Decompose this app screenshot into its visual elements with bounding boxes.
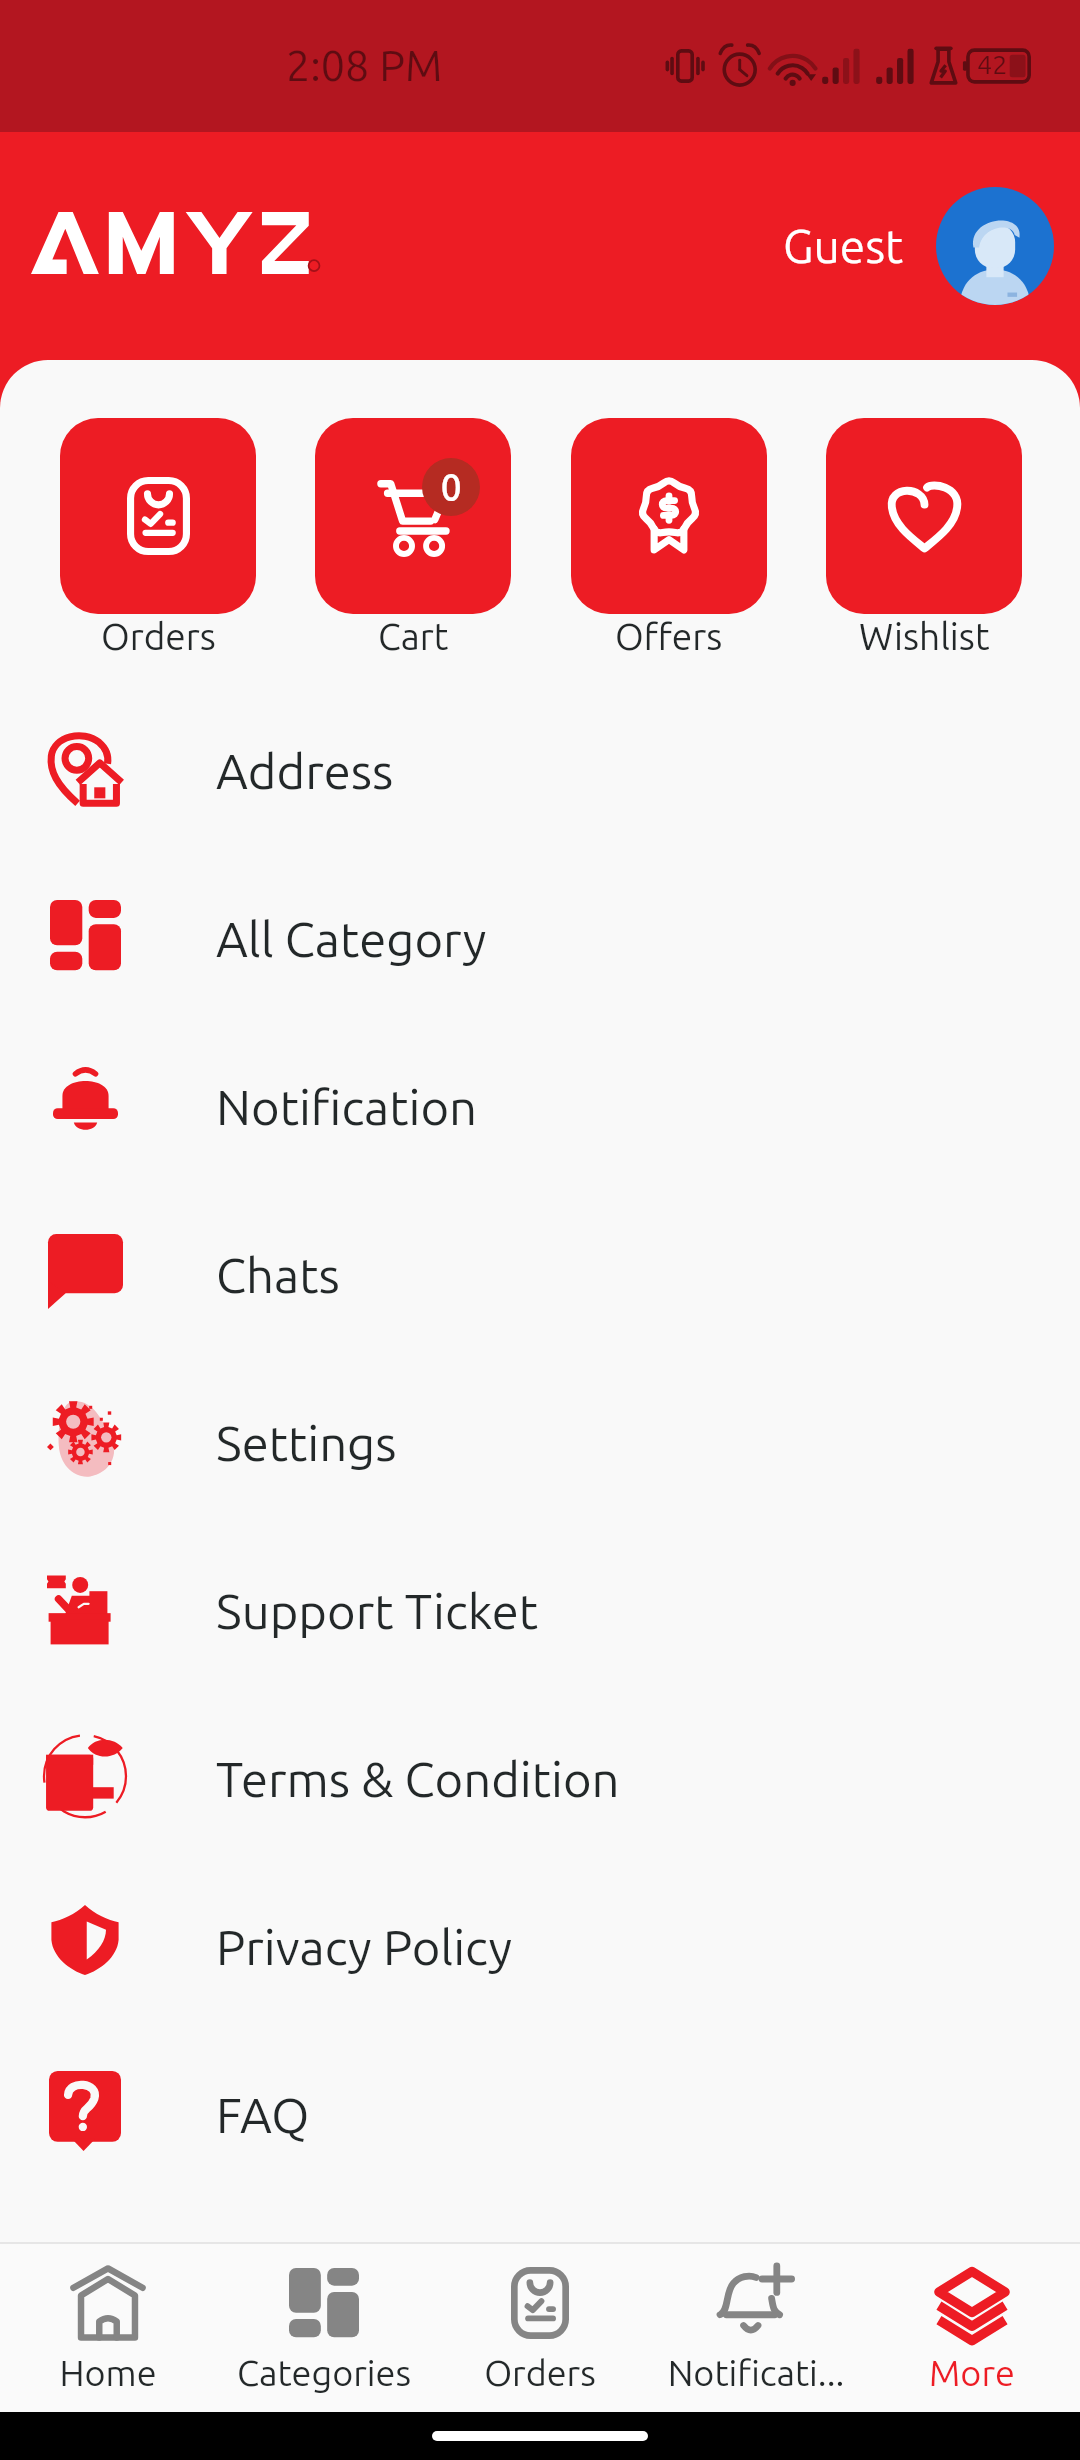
button[interactable]: All Category (0, 851, 1080, 1019)
staticText: Cart (378, 616, 449, 657)
staticText: Orders (101, 616, 216, 657)
button[interactable]: Wishlist (826, 418, 1022, 614)
staticText: Home (8, 2352, 208, 2392)
staticText: Wishlist (859, 616, 990, 657)
staticText: Support Ticket (216, 1583, 538, 1638)
button[interactable]: FAQ (0, 2027, 1080, 2195)
button[interactable]: Offers (571, 418, 767, 614)
button[interactable]: Settings (0, 1355, 1080, 1523)
staticText: Offers (615, 616, 723, 657)
button[interactable]: Privacy Policy (0, 1859, 1080, 2027)
staticText: FAQ (216, 2087, 310, 2142)
staticText: Categories (224, 2352, 424, 2392)
button[interactable]: Chats (0, 1187, 1080, 1355)
staticText: More (872, 2352, 1072, 2392)
staticText: 42 (977, 49, 1008, 79)
button[interactable]: Profile (936, 187, 1054, 305)
staticText: Settings (216, 1415, 397, 1470)
staticText: Chats (216, 1247, 340, 1302)
staticText: All Category (216, 911, 487, 966)
staticText: Notification (216, 1079, 478, 1134)
button[interactable]: Categories (224, 2264, 424, 2392)
staticText: Terms & Condition (216, 1751, 620, 1806)
button[interactable]: Orders (440, 2264, 640, 2392)
button[interactable]: Home (8, 2264, 208, 2392)
button[interactable]: Cart (315, 418, 511, 614)
staticText: 2:08 PM (286, 41, 443, 89)
staticText: Orders (440, 2352, 640, 2392)
staticText: Guest (783, 220, 904, 272)
button[interactable]: Terms & Condition (0, 1691, 1080, 1859)
staticText: 0 (441, 466, 462, 506)
button[interactable]: Address (0, 683, 1080, 851)
button[interactable]: Notification (0, 1019, 1080, 1187)
staticText: Notificati... (656, 2352, 856, 2392)
button[interactable]: More (872, 2264, 1072, 2392)
staticText: Address (216, 743, 394, 798)
staticText: Privacy Policy (216, 1919, 513, 1974)
button[interactable]: Notificati... (656, 2264, 856, 2392)
button[interactable]: Support Ticket (0, 1523, 1080, 1691)
button[interactable]: Orders (60, 418, 256, 614)
